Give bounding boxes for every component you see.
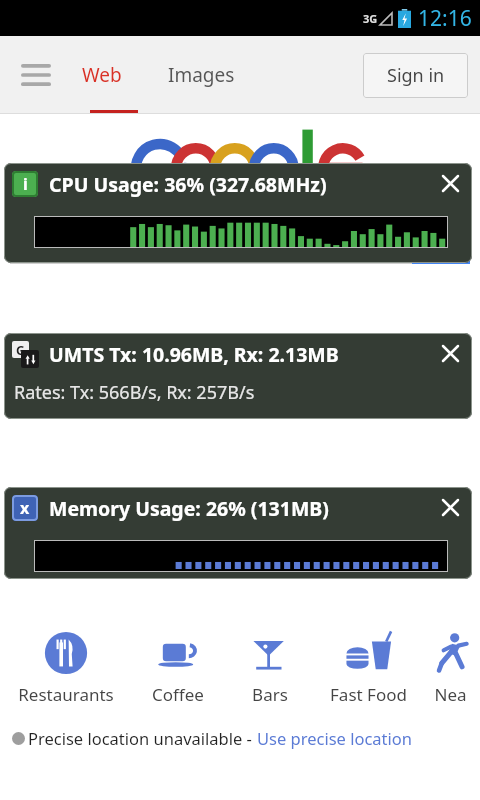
staticText: Sign in xyxy=(387,63,445,88)
staticText: i xyxy=(23,173,28,195)
button[interactable]: Bars xyxy=(224,627,316,706)
button[interactable]: Use precise location xyxy=(257,727,412,749)
staticText: Web xyxy=(82,62,122,88)
staticText: Rates: Tx: 566B/s, Rx: 257B/s xyxy=(14,380,255,405)
button[interactable]: Fast Food xyxy=(316,627,421,706)
staticText: CPU Usage: 36% (327.68MHz) xyxy=(49,171,327,198)
button[interactable]: Menu xyxy=(14,53,58,97)
staticText: Restaurants xyxy=(18,683,114,706)
staticText: Memory Usage: 26% (131MB) xyxy=(49,495,329,522)
staticText: Coffee xyxy=(152,683,204,706)
button[interactable]: G xyxy=(4,333,472,419)
staticText: Precise location unavailable - xyxy=(28,727,257,749)
staticText: Fast Food xyxy=(330,683,407,706)
staticText: 12:16 xyxy=(418,4,472,33)
button[interactable]: Coffee xyxy=(132,627,224,706)
staticText: Nea xyxy=(434,683,467,706)
staticText: UMTS Tx: 10.96MB, Rx: 2.13MB xyxy=(49,341,339,368)
button[interactable]: Restaurants xyxy=(0,627,132,706)
staticText: Bars xyxy=(252,683,288,706)
button[interactable]: Search xyxy=(412,214,470,264)
button[interactable]: Close xyxy=(432,165,468,201)
button[interactable]: x xyxy=(4,487,472,579)
staticText: 3G xyxy=(363,11,378,26)
button[interactable]: Sign in xyxy=(363,53,468,98)
button[interactable]: Images xyxy=(158,62,245,88)
button[interactable]: Web xyxy=(72,62,132,88)
button[interactable]: Close xyxy=(432,489,468,525)
staticText: x xyxy=(20,497,30,519)
button[interactable]: i xyxy=(4,163,472,263)
button[interactable]: Nea xyxy=(421,627,480,706)
staticText: G xyxy=(16,342,25,358)
button[interactable] xyxy=(10,214,412,264)
button[interactable]: Close xyxy=(432,335,468,371)
